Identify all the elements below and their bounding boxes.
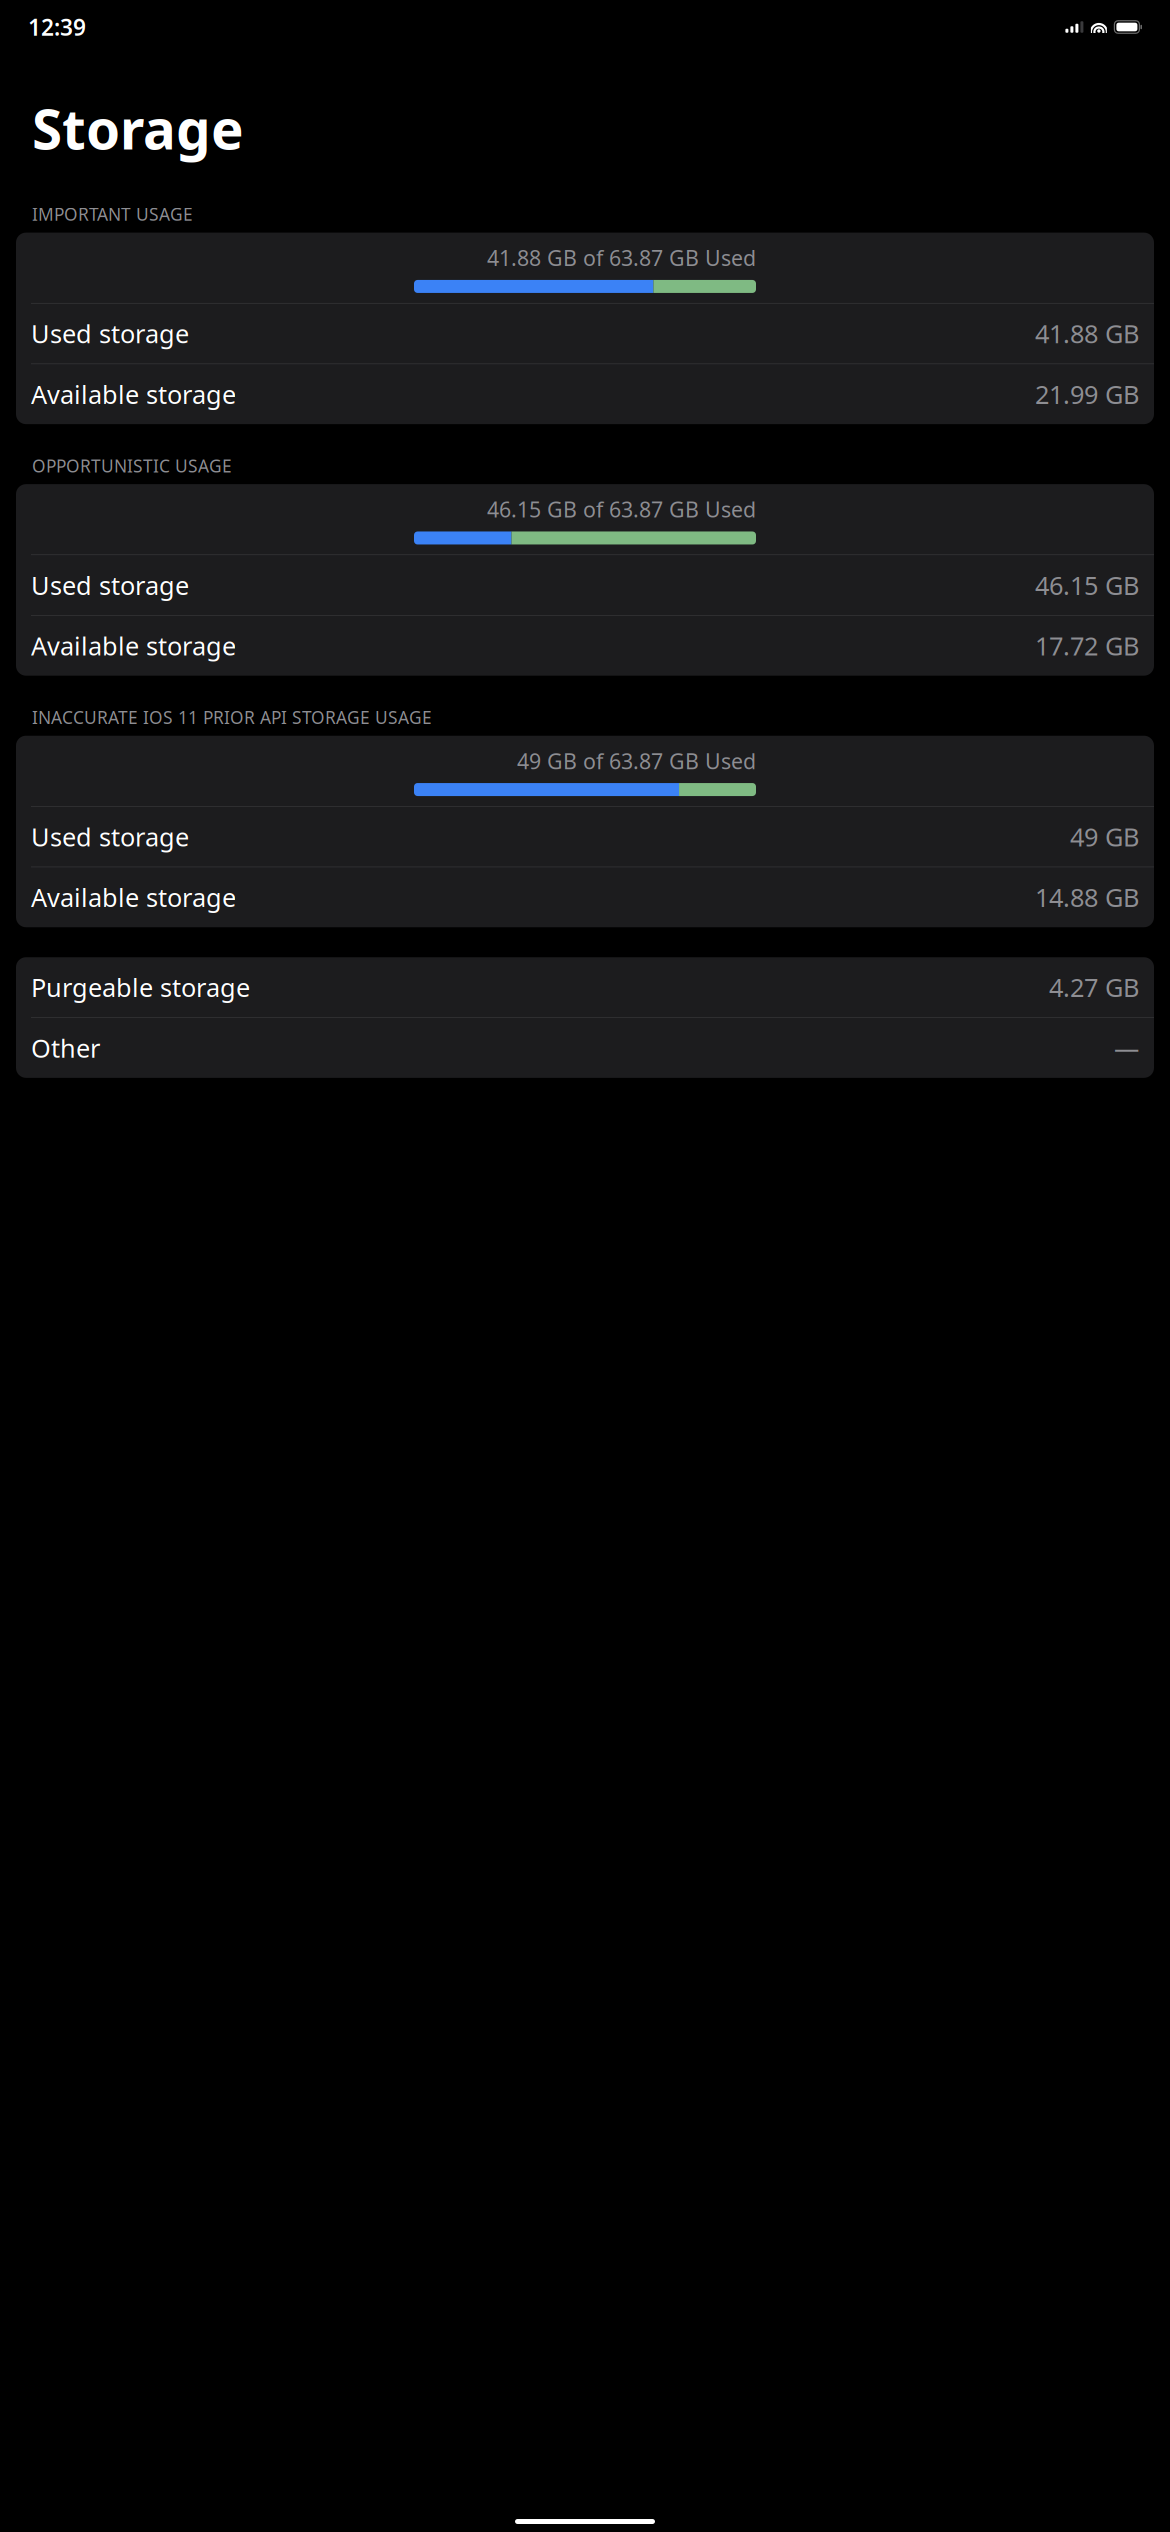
- staticText: 21.99 GB: [1035, 377, 1139, 411]
- staticText: INACCURATE IOS 11 PRIOR API STORAGE USAG…: [32, 706, 432, 729]
- button[interactable]: Used storage: [16, 807, 1154, 867]
- staticText: IMPORTANT USAGE: [32, 203, 193, 226]
- button[interactable]: Available storage: [16, 867, 1154, 927]
- staticText: Available storage: [31, 629, 236, 662]
- staticText: Used storage: [31, 820, 189, 853]
- button[interactable]: Purgeable storage: [16, 957, 1154, 1017]
- staticText: OPPORTUNISTIC USAGE: [32, 454, 232, 477]
- staticText: Other: [31, 1031, 100, 1065]
- staticText: —: [1114, 1031, 1139, 1065]
- staticText: 17.72 GB: [1035, 629, 1139, 662]
- staticText: Storage: [32, 92, 244, 165]
- button[interactable]: Available storage: [16, 616, 1154, 676]
- staticText: 41.88 GB of 63.87 GB Used: [487, 244, 756, 272]
- staticText: 46.15 GB: [1035, 568, 1139, 602]
- staticText: 41.88 GB: [1035, 317, 1139, 350]
- staticText: 46.15 GB of 63.87 GB Used: [487, 495, 756, 523]
- staticText: Used storage: [31, 568, 189, 602]
- staticText: 14.88 GB: [1035, 880, 1139, 914]
- staticText: 12:39: [28, 12, 86, 42]
- staticText: Used storage: [31, 317, 189, 350]
- staticText: Purgeable storage: [31, 970, 250, 1004]
- staticText: 4.27 GB: [1049, 970, 1139, 1004]
- staticText: 49 GB of 63.87 GB Used: [517, 747, 756, 775]
- staticText: Available storage: [31, 880, 236, 914]
- button[interactable]: Other: [16, 1018, 1154, 1078]
- button[interactable]: Available storage: [16, 364, 1154, 424]
- staticText: 49 GB: [1070, 820, 1139, 853]
- button[interactable]: Used storage: [16, 303, 1154, 363]
- button[interactable]: Used storage: [16, 555, 1154, 615]
- staticText: Available storage: [31, 377, 236, 411]
